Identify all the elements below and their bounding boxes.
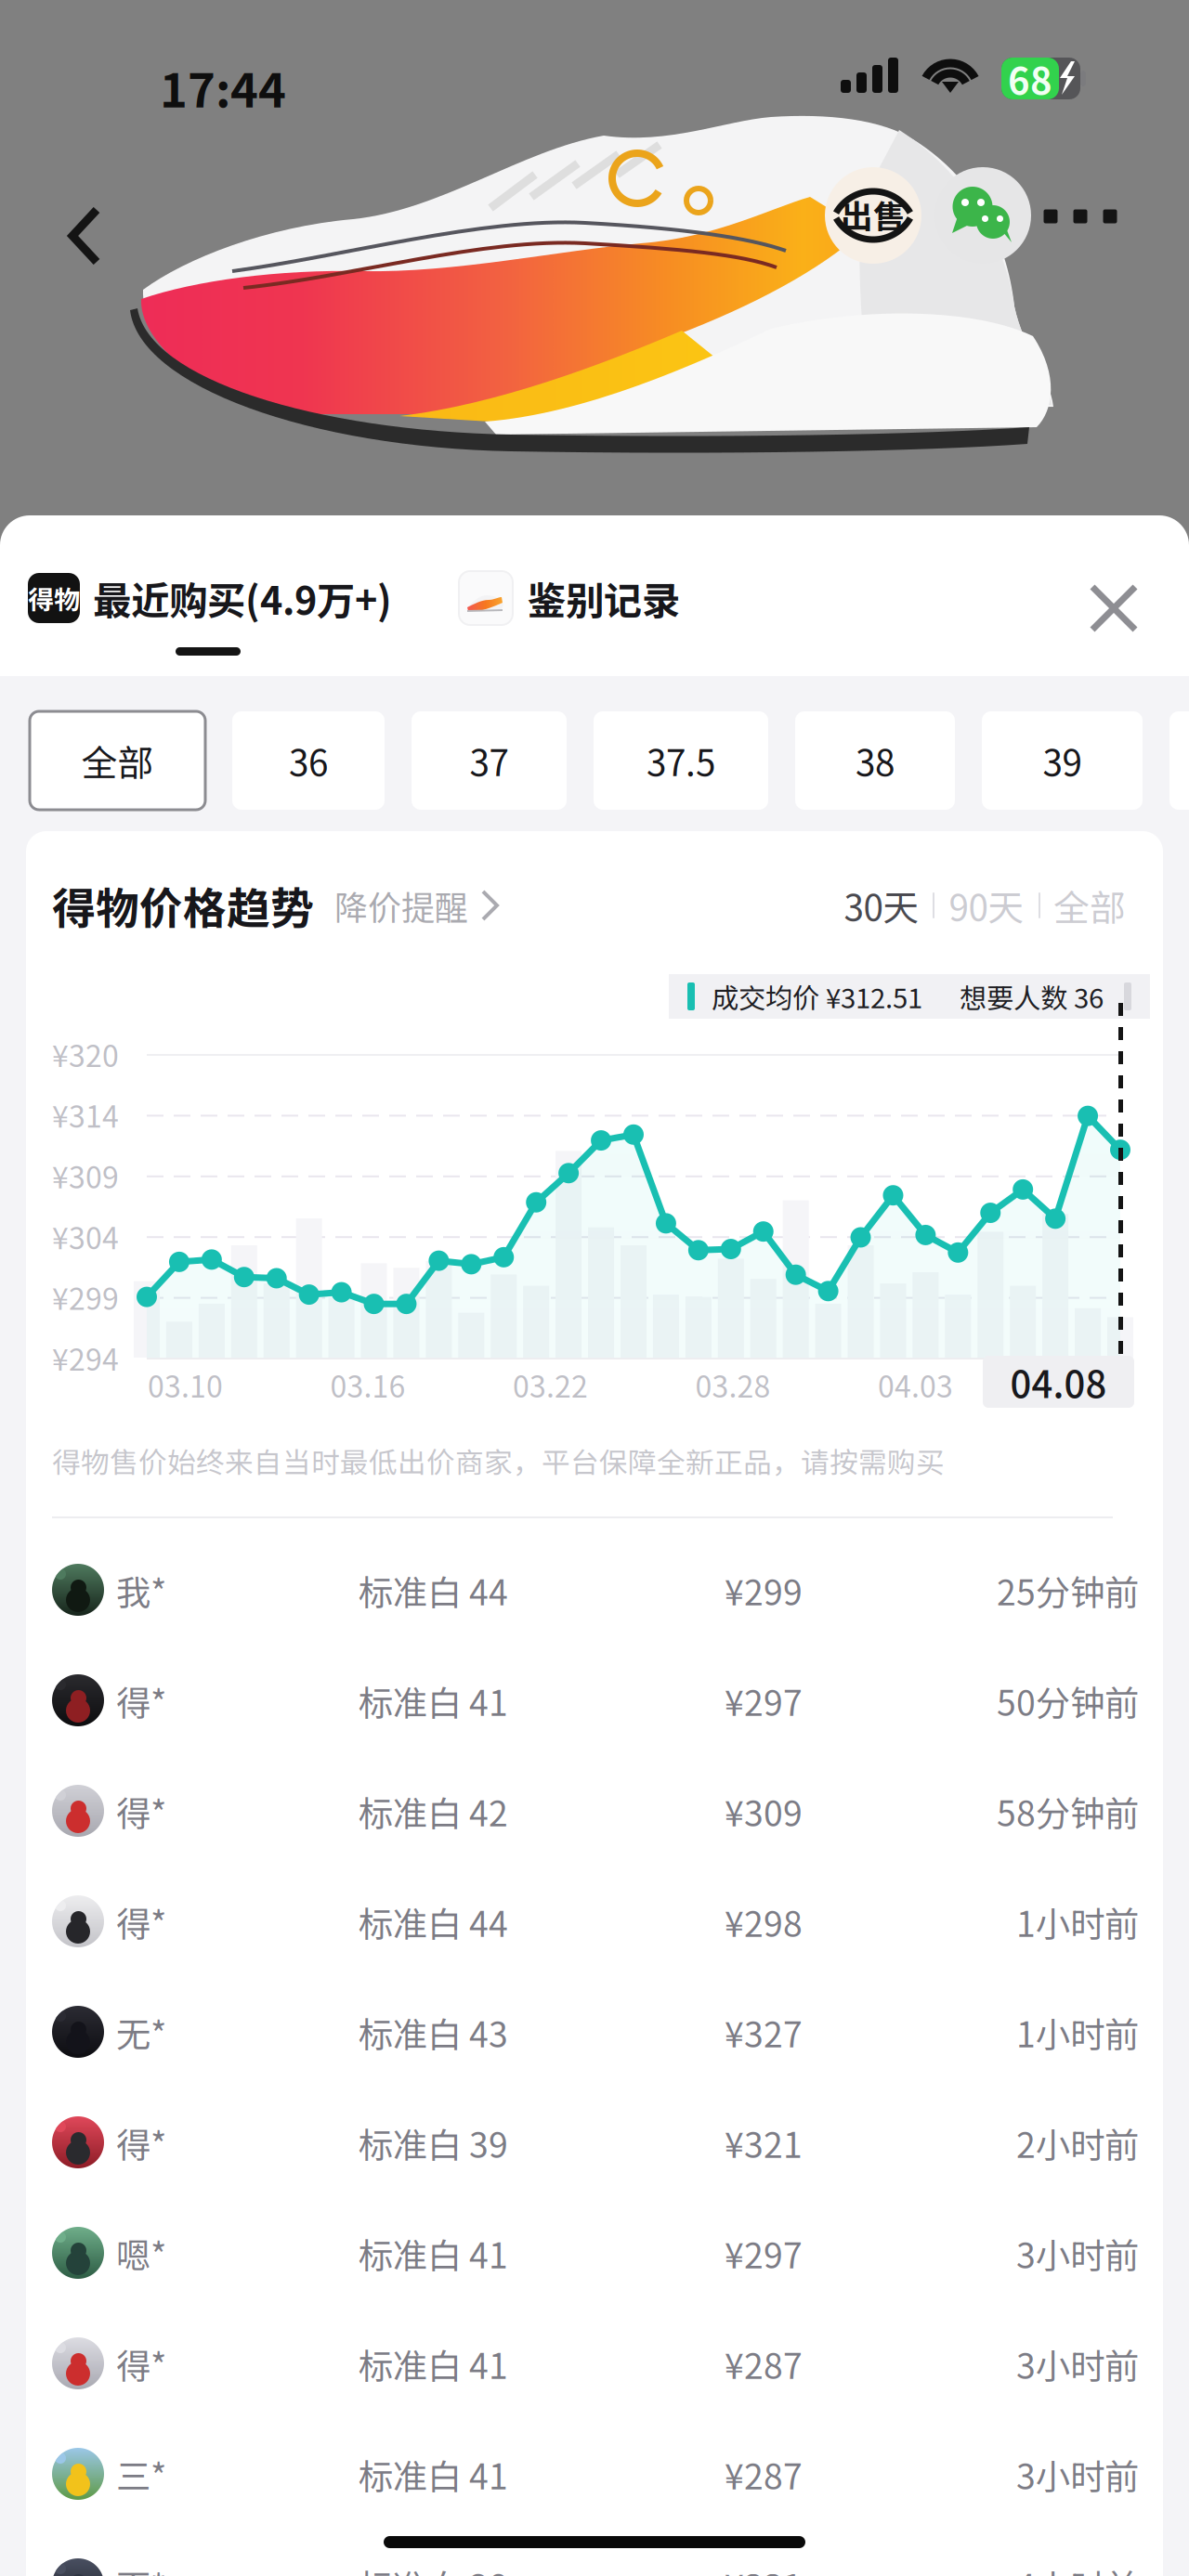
staticText: 3小时前	[1016, 2449, 1139, 2499]
staticText: ¥298	[725, 1897, 803, 1947]
button[interactable]: 37	[412, 711, 567, 810]
button[interactable]: 90天	[934, 880, 1039, 930]
staticText: ¥327	[725, 2007, 803, 2057]
staticText: 标准白 39	[359, 2118, 508, 2168]
staticText: 04.08	[1010, 1355, 1107, 1409]
staticText: 3小时前	[1016, 2228, 1139, 2278]
staticText: 标准白 38	[359, 2560, 508, 2576]
staticText: 68	[1008, 52, 1052, 105]
staticText: 最近购买(4.9万+)	[93, 570, 392, 626]
staticText: 百*	[116, 2560, 166, 2576]
staticText: 想要人数 36	[960, 977, 1104, 1016]
staticText: 降价提醒	[334, 881, 468, 930]
staticText: 鉴别记录	[528, 570, 680, 626]
staticText: ¥287	[725, 2339, 803, 2389]
staticText: 标准白 41	[359, 2449, 508, 2499]
button[interactable]: 微信分享	[934, 167, 1031, 264]
staticText: ¥331	[725, 2560, 803, 2576]
staticText: 得*	[116, 1786, 166, 1836]
staticText: 得物价格趋势	[52, 874, 314, 937]
staticText: ¥297	[725, 1676, 803, 1726]
button[interactable]: 36	[232, 711, 385, 810]
staticText: ¥309	[52, 1154, 119, 1197]
staticText: 39	[1043, 735, 1082, 787]
staticText: ¥294	[52, 1336, 119, 1379]
staticText: 得*	[116, 2118, 166, 2168]
staticText: 03.16	[330, 1363, 405, 1406]
button[interactable]: 37.5	[594, 711, 768, 810]
button[interactable]: 鉴别记录	[459, 573, 738, 623]
button[interactable]: 我*	[0, 1535, 1189, 1646]
staticText: 03.10	[148, 1363, 223, 1406]
button[interactable]: 39	[982, 711, 1143, 810]
staticText: 得物售价始终来自当时最低出价商家，平台保障全新正品，请按需购买	[52, 1440, 945, 1481]
staticText: 03.28	[695, 1363, 771, 1406]
staticText: ¥299	[52, 1275, 119, 1318]
staticText: 58分钟前	[997, 1786, 1139, 1836]
staticText: 37.5	[647, 735, 715, 787]
staticText: 标准白 41	[359, 2228, 508, 2278]
staticText: 标准白 44	[359, 1565, 508, 1615]
button[interactable]: 关闭	[1066, 561, 1161, 656]
staticText: ¥287	[725, 2449, 803, 2499]
staticText: 得*	[116, 2339, 166, 2389]
staticText: 三*	[116, 2449, 166, 2499]
staticText: ¥304	[52, 1215, 119, 1258]
staticText: 2小时前	[1016, 2118, 1139, 2168]
staticText: 37	[470, 735, 509, 787]
button[interactable]: 得*	[0, 2088, 1189, 2198]
button[interactable]: 得*	[0, 1867, 1189, 1977]
staticText: 得*	[116, 1676, 166, 1726]
button[interactable]: 百*	[0, 2530, 1189, 2576]
staticText: 标准白 41	[359, 2339, 508, 2389]
button[interactable]: 返回	[39, 176, 132, 295]
staticText: 03.22	[513, 1363, 588, 1406]
button[interactable]: 得*	[0, 1756, 1189, 1867]
staticText: 得物	[28, 579, 80, 617]
staticText: 无*	[116, 2007, 166, 2057]
staticText: 1小时前	[1016, 1897, 1139, 1947]
button[interactable]: 出售	[825, 167, 921, 264]
staticText: 成交均价 ¥312.51	[712, 977, 922, 1016]
button[interactable]: 全部	[30, 711, 205, 810]
staticText: 标准白 43	[359, 2007, 508, 2057]
staticText: ¥309	[725, 1786, 803, 1836]
button[interactable]: 30天	[830, 880, 933, 930]
staticText: 38	[856, 735, 895, 787]
staticText: 标准白 41	[359, 1676, 508, 1726]
staticText: 标准白 44	[359, 1897, 508, 1947]
staticText: ¥321	[725, 2118, 803, 2168]
staticText: 我*	[116, 1565, 166, 1615]
staticText: 36	[289, 735, 328, 787]
button[interactable]: 38	[795, 711, 955, 810]
staticText: ¥314	[52, 1093, 119, 1136]
button[interactable]: 无*	[0, 1977, 1189, 2088]
staticText: 30天	[844, 879, 919, 931]
staticText: 嗯*	[116, 2228, 166, 2278]
staticText: 得*	[116, 1897, 166, 1947]
staticText: 3小时前	[1016, 2339, 1139, 2389]
staticText: 1小时前	[1016, 2007, 1139, 2057]
staticText: 90天	[949, 879, 1024, 931]
staticText: 出售	[841, 191, 906, 238]
staticText: 标准白 42	[359, 1786, 508, 1836]
button[interactable]: 嗯*	[0, 2198, 1189, 2309]
staticText: 50分钟前	[997, 1676, 1139, 1726]
staticText: 17:44	[160, 53, 286, 121]
staticText: ¥320	[52, 1032, 119, 1075]
button[interactable]: 更多	[1029, 176, 1131, 256]
staticText: 25分钟前	[997, 1565, 1139, 1615]
staticText: 4小时前	[1016, 2560, 1139, 2576]
staticText: ¥299	[725, 1565, 803, 1615]
button[interactable]: 得*	[0, 1646, 1189, 1756]
staticText: 04.03	[878, 1363, 953, 1406]
button[interactable]: 降价提醒	[314, 870, 501, 941]
button[interactable]: 得*	[0, 2309, 1189, 2419]
staticText: 全部	[81, 735, 154, 787]
staticText: 全部	[1053, 879, 1126, 931]
button[interactable]: 全部	[1040, 880, 1139, 930]
staticText: ¥297	[725, 2228, 803, 2278]
button[interactable]: 三*	[0, 2419, 1189, 2530]
button[interactable]: 得物	[28, 573, 418, 623]
